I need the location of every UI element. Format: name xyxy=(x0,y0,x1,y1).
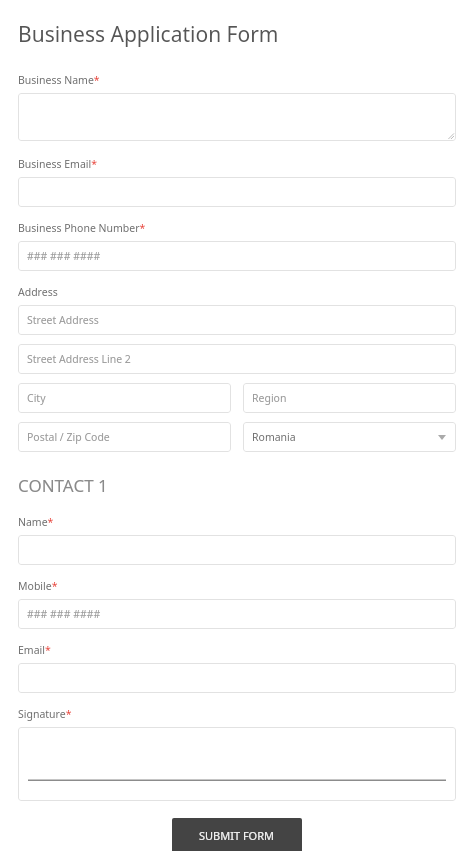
button[interactable] xyxy=(18,535,456,565)
staticText: Street Address Line 2 xyxy=(27,352,131,366)
staticText: Email* xyxy=(18,643,51,657)
staticText: SUBMIT FORM xyxy=(199,828,275,843)
button[interactable]: Postal / Zip Code xyxy=(18,422,231,452)
button[interactable] xyxy=(18,663,456,693)
staticText: Business Email* xyxy=(18,157,98,171)
button[interactable]: ### ### #### xyxy=(18,241,456,271)
staticText: Street Address xyxy=(27,313,99,327)
staticText: Mobile* xyxy=(18,579,58,593)
button[interactable]: Street Address Line 2 xyxy=(18,344,456,374)
button[interactable]: SUBMIT FORM xyxy=(172,818,302,851)
staticText: Name* xyxy=(18,515,54,529)
button[interactable] xyxy=(18,177,456,207)
staticText: Romania xyxy=(252,430,296,444)
staticText: Postal / Zip Code xyxy=(27,430,110,444)
button[interactable] xyxy=(18,93,456,141)
staticText: CONTACT 1 xyxy=(18,474,108,497)
button[interactable]: Signature pad xyxy=(18,727,456,801)
button[interactable]: Region xyxy=(243,383,456,413)
staticText: City xyxy=(27,391,46,405)
staticText: Signature* xyxy=(18,707,72,721)
staticText: ### ### #### xyxy=(27,607,101,621)
staticText: Business Name* xyxy=(18,73,100,87)
staticText: Address xyxy=(18,285,58,299)
button[interactable]: Street Address xyxy=(18,305,456,335)
staticText: Region xyxy=(252,391,287,405)
staticText: Business Application Form xyxy=(18,20,279,49)
button[interactable]: City xyxy=(18,383,231,413)
staticText: ### ### #### xyxy=(27,249,101,263)
staticText: Business Phone Number* xyxy=(18,221,146,235)
button[interactable]: ### ### #### xyxy=(18,599,456,629)
button[interactable]: Romania xyxy=(243,422,456,452)
